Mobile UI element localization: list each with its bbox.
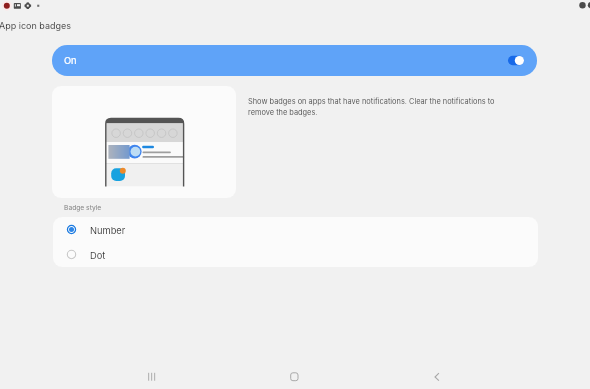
button[interactable]: Back	[423, 363, 451, 389]
button[interactable]: Number	[53, 217, 538, 242]
staticText: Number	[90, 225, 126, 236]
button[interactable]: Home	[281, 363, 309, 389]
staticText: Badge style	[64, 204, 102, 212]
staticText: App icon badges	[0, 20, 72, 31]
staticText: On	[64, 55, 77, 66]
staticText: Show badges on apps that have notificati…	[248, 97, 501, 117]
button[interactable]: Dot	[53, 242, 538, 267]
staticText: Dot	[90, 250, 106, 261]
button[interactable]: On	[52, 45, 537, 76]
button[interactable]: Recent apps	[137, 363, 165, 389]
